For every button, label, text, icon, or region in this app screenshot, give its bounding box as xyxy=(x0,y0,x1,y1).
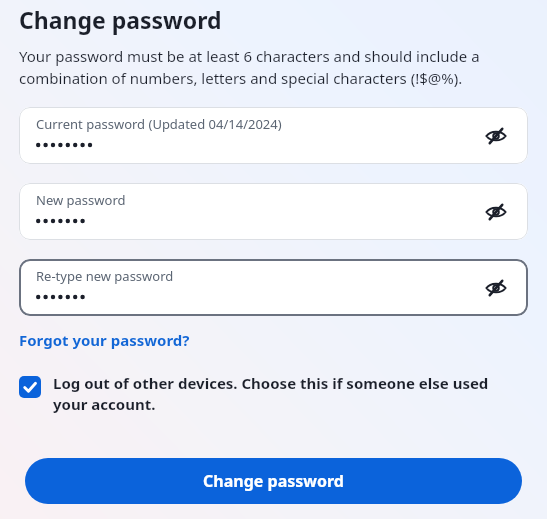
staticText: Forgot your password? xyxy=(19,330,190,350)
staticText: Change password xyxy=(203,470,344,492)
staticText: Current password (Updated 04/14/2024) xyxy=(36,115,282,133)
staticText: Re-type new password xyxy=(36,267,174,285)
staticText: Log out of other devices. Choose this if… xyxy=(53,373,517,415)
button[interactable]: Re-type new password xyxy=(19,259,528,316)
button[interactable]: Show password xyxy=(478,118,514,154)
button[interactable]: New password xyxy=(19,183,528,240)
button[interactable]: Log out of other devices. Choose this if… xyxy=(0,373,547,415)
button[interactable]: Forgot your password? xyxy=(19,328,190,352)
staticText: Change password xyxy=(19,4,222,35)
button[interactable]: Show password xyxy=(478,270,514,306)
staticText: Your password must be at least 6 charact… xyxy=(19,46,495,89)
button[interactable]: Change password xyxy=(25,458,522,504)
staticText: New password xyxy=(36,191,126,209)
button[interactable]: Current password (Updated 04/14/2024) xyxy=(19,107,528,164)
button[interactable]: Show password xyxy=(478,194,514,230)
